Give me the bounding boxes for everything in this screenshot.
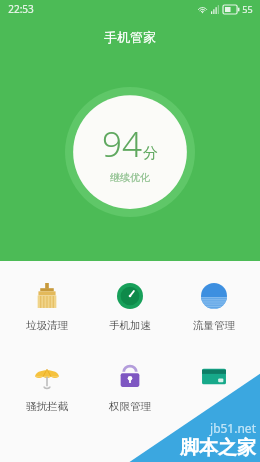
staticText: 脚本之家 — [180, 436, 256, 460]
staticText: 手机加速 — [109, 319, 151, 332]
button[interactable]: 垃圾清理 — [10, 277, 84, 336]
button[interactable]: 流量管理 — [177, 277, 251, 336]
staticText: 94 — [102, 120, 142, 168]
staticText: 骚扰拦截 — [26, 400, 68, 413]
staticText: 22:53 — [8, 2, 34, 16]
staticText: 权限管理 — [109, 400, 151, 413]
button[interactable]: 手机加速 — [93, 277, 167, 336]
staticText: jb51.net — [210, 420, 256, 436]
staticText: 手机管家 — [104, 29, 156, 45]
staticText: 继续优化 — [110, 171, 150, 184]
button[interactable]: 银行卡管家 — [177, 358, 251, 404]
button[interactable]: 骚扰拦截 — [10, 358, 84, 417]
staticText: 垃圾清理 — [26, 319, 68, 332]
staticText: 分 — [143, 144, 158, 163]
staticText: 55 — [242, 3, 253, 15]
button[interactable]: 权限管理 — [93, 358, 167, 417]
staticText: 流量管理 — [193, 319, 235, 332]
